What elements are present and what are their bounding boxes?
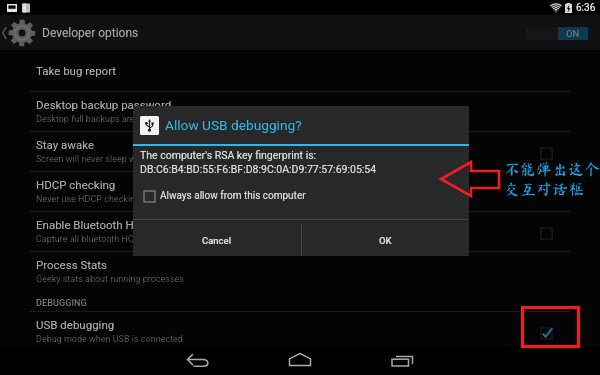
button[interactable]: USB debugging bbox=[0, 311, 600, 351]
staticText: ON bbox=[566, 28, 580, 39]
button[interactable]: Always allow from this computer bbox=[144, 190, 306, 202]
staticText: Never use HDCP checking bbox=[36, 194, 141, 205]
staticText: Desktop backup password bbox=[36, 98, 172, 111]
staticText: Geeky stats about running processes bbox=[36, 274, 184, 285]
staticText: Always allow from this computer bbox=[160, 190, 306, 202]
staticText: Capture all bluetooth HCI packets in a f… bbox=[36, 234, 201, 245]
button[interactable]: Home bbox=[270, 346, 330, 375]
button[interactable]: Stay awake bbox=[531, 136, 561, 166]
button[interactable]: Enable Bluetooth HCI snoop log bbox=[0, 211, 600, 251]
staticText: 6:36 bbox=[576, 2, 596, 14]
staticText: Allow USB debugging? bbox=[165, 117, 302, 133]
staticText: Take bug report bbox=[36, 64, 117, 77]
button[interactable]: Developer options on/off bbox=[526, 27, 588, 40]
staticText: Process Stats bbox=[36, 258, 107, 271]
staticText: Developer options bbox=[42, 26, 139, 40]
button[interactable]: HDCP checking bbox=[0, 171, 600, 211]
staticText: Debug mode when USB is connected bbox=[36, 334, 183, 345]
button[interactable]: Stay awake bbox=[0, 131, 600, 171]
button[interactable]: Process Stats bbox=[0, 251, 600, 291]
staticText: HDCP checking bbox=[36, 178, 116, 191]
button[interactable]: USB debugging bbox=[531, 316, 561, 346]
staticText: Cancel bbox=[202, 235, 232, 246]
staticText: Screen will never sleep while charging bbox=[36, 154, 187, 165]
button[interactable]: Recent apps bbox=[372, 346, 432, 375]
other: Developer options icon bbox=[7, 18, 37, 48]
staticText: USB debugging bbox=[36, 318, 115, 331]
button[interactable]: Developer options icon bbox=[0, 15, 139, 50]
button[interactable]: OK bbox=[302, 224, 469, 256]
staticText: Desktop full backups aren't currently pr… bbox=[36, 114, 222, 125]
staticText: OK bbox=[379, 235, 392, 246]
staticText: The computer's RSA key fingerprint is: bbox=[140, 149, 317, 161]
staticText: 不能弹出这个 bbox=[504, 161, 600, 177]
staticText: Stay awake bbox=[36, 138, 95, 151]
staticText: 交互对话框 bbox=[504, 181, 585, 197]
staticText: Enable Bluetooth HCI snoop log bbox=[36, 218, 198, 231]
button[interactable]: Enable Bluetooth HCI snoop log bbox=[531, 216, 561, 246]
button[interactable]: Cancel bbox=[133, 224, 301, 256]
staticText: DB:C6:B4:BD:55:F6:BF:D8:9C:0A:D9:77:57:6… bbox=[140, 163, 377, 175]
button[interactable]: Take bug report bbox=[0, 50, 600, 91]
button[interactable]: Back bbox=[170, 346, 230, 375]
staticText: DEBUGGING bbox=[36, 298, 87, 309]
button[interactable]: Desktop backup password bbox=[0, 91, 600, 131]
